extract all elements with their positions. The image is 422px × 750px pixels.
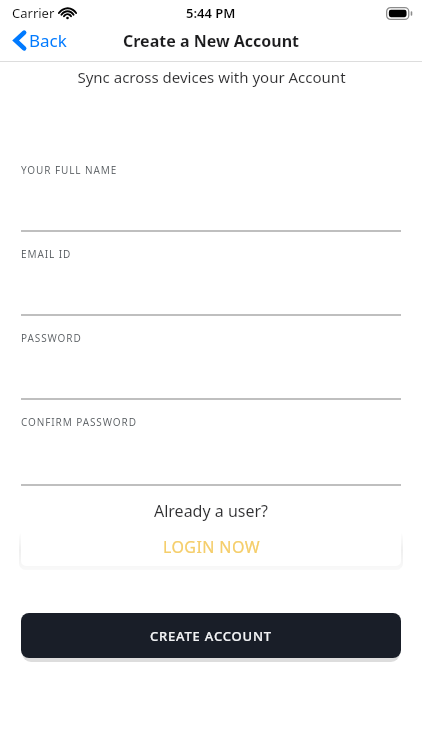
staticText: CONFIRM PASSWORD (21, 415, 137, 429)
button[interactable]: PASSWORD (21, 331, 401, 400)
staticText: 5:44 PM (186, 4, 236, 22)
button[interactable]: YOUR FULL NAME (21, 163, 401, 232)
staticText: EMAIL ID (21, 247, 72, 261)
staticText: Create a New Account (123, 30, 300, 52)
button[interactable]: EMAIL ID (21, 247, 401, 316)
staticText: CREATE ACCOUNT (150, 627, 272, 645)
staticText: YOUR FULL NAME (21, 163, 118, 177)
staticText: Carrier (12, 4, 55, 22)
staticText: PASSWORD (21, 331, 82, 345)
button[interactable]: LOGIN NOW (21, 527, 401, 566)
staticText: Already a user? (0, 500, 422, 522)
staticText: LOGIN NOW (163, 536, 260, 558)
staticText: Sync across devices with your Account (77, 67, 346, 87)
button[interactable]: Back (10, 25, 71, 56)
staticText: Back (29, 29, 67, 52)
button[interactable]: CREATE ACCOUNT (21, 613, 401, 658)
button[interactable]: CONFIRM PASSWORD (21, 415, 401, 486)
